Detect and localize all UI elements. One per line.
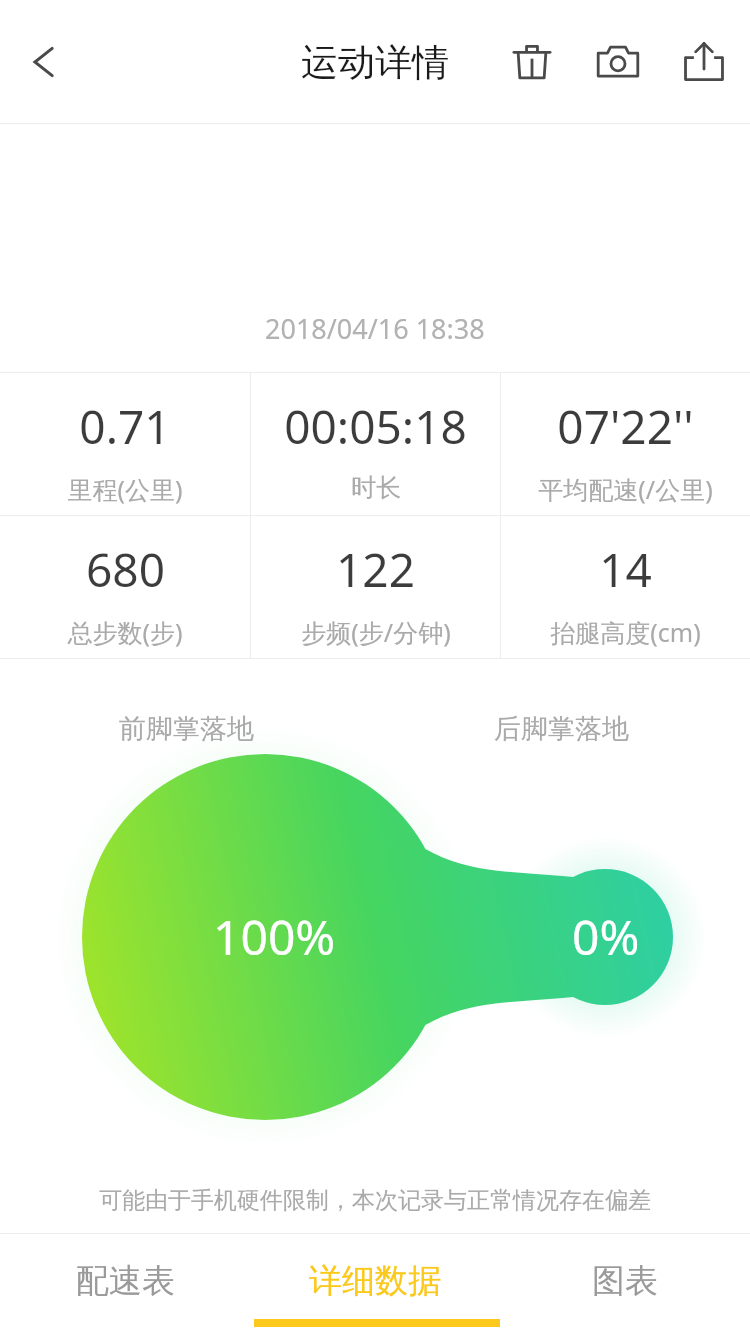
staticText: 平均配速(/公里) bbox=[538, 472, 713, 506]
button[interactable]: 配速表 bbox=[0, 1234, 250, 1327]
button[interactable]: Delete bbox=[502, 32, 562, 92]
staticText: 抬腿高度(cm) bbox=[550, 615, 701, 649]
button[interactable]: 14 bbox=[501, 516, 750, 658]
button[interactable]: Share bbox=[674, 32, 734, 92]
staticText: 时长 bbox=[351, 472, 401, 503]
button[interactable]: 详细数据 bbox=[250, 1234, 500, 1327]
staticText: 总步数(步) bbox=[67, 615, 183, 649]
staticText: 0% bbox=[572, 904, 640, 969]
button[interactable]: 680 bbox=[0, 516, 250, 658]
button[interactable]: 图表 bbox=[500, 1234, 750, 1327]
staticText: 0.71 bbox=[79, 395, 171, 458]
staticText: 可能由于手机硬件限制，本次记录与正常情况存在偏差 bbox=[99, 1186, 651, 1215]
staticText: 07'22'' bbox=[557, 395, 694, 458]
staticText: 100% bbox=[213, 904, 336, 969]
staticText: 运动详情 bbox=[301, 39, 449, 86]
button[interactable]: Back bbox=[14, 31, 76, 93]
button[interactable]: 07'22'' bbox=[501, 373, 750, 515]
staticText: 14 bbox=[599, 538, 652, 601]
staticText: 配速表 bbox=[76, 1260, 175, 1302]
staticText: 后脚掌落地 bbox=[494, 712, 629, 746]
staticText: 680 bbox=[86, 538, 165, 601]
button[interactable]: Camera bbox=[588, 32, 648, 92]
staticText: 里程(公里) bbox=[67, 472, 183, 506]
button[interactable]: 0.71 bbox=[0, 373, 250, 515]
staticText: 122 bbox=[336, 538, 415, 601]
staticText: 前脚掌落地 bbox=[119, 712, 254, 746]
staticText: 详细数据 bbox=[309, 1260, 441, 1302]
staticText: 00:05:18 bbox=[284, 395, 467, 458]
button[interactable]: 00:05:18 bbox=[251, 373, 500, 515]
button[interactable]: 122 bbox=[251, 516, 500, 658]
staticText: 步频(步/分钟) bbox=[301, 615, 451, 649]
staticText: 2018/04/16 18:38 bbox=[265, 310, 485, 347]
staticText: 图表 bbox=[592, 1260, 658, 1302]
